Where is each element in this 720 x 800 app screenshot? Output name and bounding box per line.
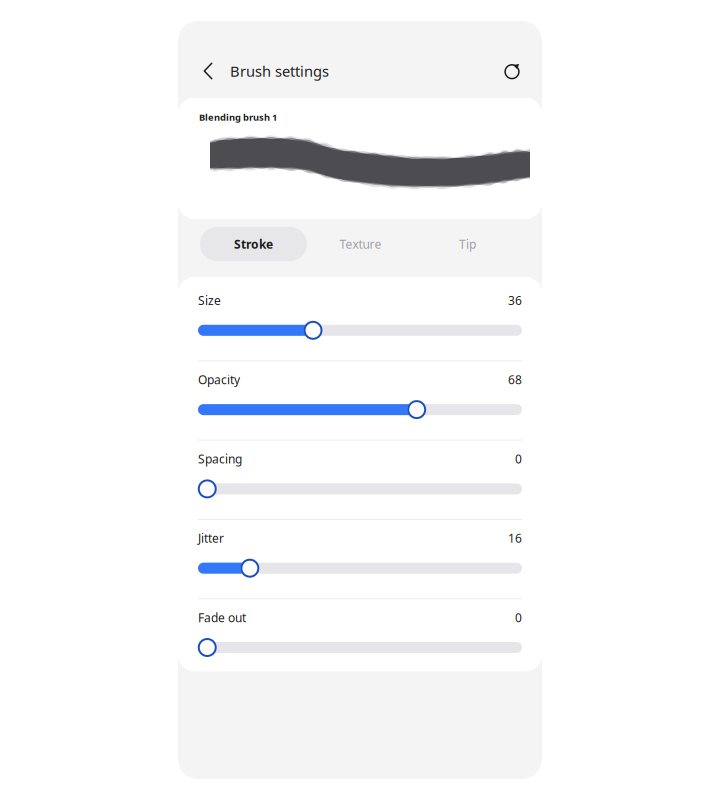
button[interactable]: Texture — [307, 227, 414, 261]
staticText: 36 — [508, 292, 522, 308]
staticText: Tip — [459, 236, 476, 252]
staticText: 0 — [515, 451, 522, 467]
staticText: Jitter — [198, 530, 224, 546]
staticText: Stroke — [234, 236, 273, 252]
staticText: 16 — [508, 530, 522, 546]
button[interactable]: Stroke — [200, 227, 307, 261]
button[interactable]: Back — [195, 54, 221, 88]
staticText: 0 — [515, 609, 522, 625]
staticText: 68 — [508, 372, 522, 387]
staticText: Opacity — [198, 372, 240, 387]
staticText: Brush settings — [230, 61, 329, 81]
button[interactable]: Tip — [414, 227, 521, 261]
staticText: Size — [198, 292, 221, 308]
staticText: Spacing — [198, 451, 242, 467]
staticText: Texture — [339, 236, 381, 252]
button[interactable]: Reset — [499, 54, 525, 88]
staticText: Blending brush 1 — [199, 111, 277, 123]
staticText: Fade out — [198, 609, 246, 625]
